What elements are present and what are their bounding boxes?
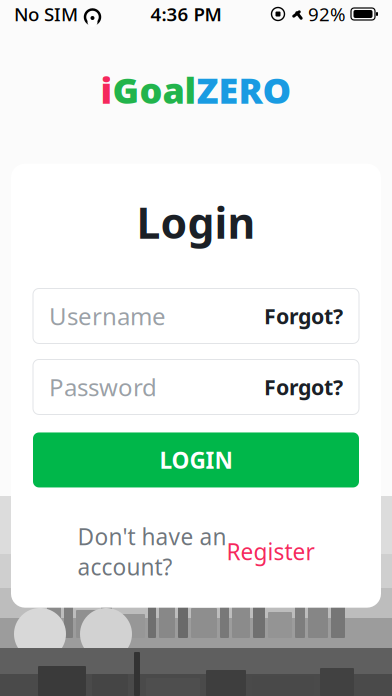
staticText: Don't have an account? bbox=[77, 521, 226, 582]
staticText: i bbox=[100, 66, 112, 114]
button[interactable]: Don't have an account? bbox=[55, 517, 336, 586]
staticText: Forgot? bbox=[264, 373, 343, 401]
staticText: Password bbox=[49, 371, 157, 403]
staticText: LOGIN bbox=[159, 445, 232, 475]
staticText: Goal bbox=[112, 66, 196, 114]
staticText: Login bbox=[136, 194, 255, 250]
staticText: 92% bbox=[308, 2, 346, 26]
staticText: ZERO bbox=[196, 66, 291, 114]
staticText: Forgot? bbox=[264, 302, 343, 330]
button[interactable]: LOGIN bbox=[33, 432, 359, 487]
button[interactable]: Forgot? bbox=[254, 367, 343, 407]
button[interactable]: Forgot? bbox=[254, 296, 343, 336]
staticText: Username bbox=[49, 300, 166, 332]
staticText: Register bbox=[226, 536, 314, 567]
staticText: No SIM bbox=[14, 2, 78, 26]
staticText: 4:36 PM bbox=[150, 2, 221, 26]
